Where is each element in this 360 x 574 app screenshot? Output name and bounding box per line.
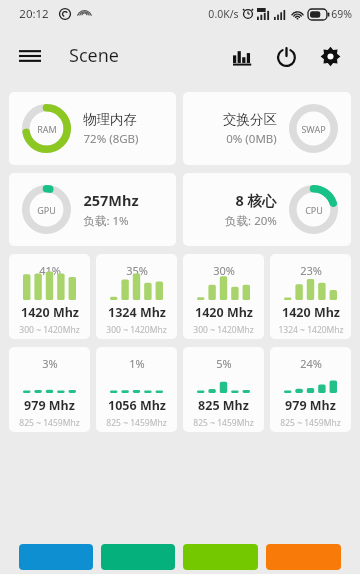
- staticText: 979 Mhz: [285, 397, 336, 414]
- staticText: 41%: [39, 263, 61, 278]
- staticText: 72% (8GB): [83, 131, 139, 147]
- staticText: RAM: [37, 123, 57, 135]
- button[interactable]: Statistics: [220, 34, 264, 78]
- staticText: 1324 Mhz: [108, 304, 166, 321]
- button[interactable]: Power: [264, 34, 308, 78]
- staticText: 1420 Mhz: [21, 304, 79, 321]
- button[interactable]: 3%: [9, 347, 90, 432]
- staticText: 负载: 20%: [225, 213, 277, 229]
- staticText: 300 ~ 1420Mhz: [19, 324, 80, 336]
- staticText: 交换分区: [223, 111, 277, 128]
- button[interactable]: 23%: [270, 254, 351, 339]
- button[interactable]: Mode 3: [183, 544, 258, 570]
- staticText: 24%: [300, 356, 322, 371]
- staticText: 825 Mhz: [198, 397, 249, 414]
- button[interactable]: Mode 4: [266, 544, 341, 570]
- button[interactable]: 24%: [270, 347, 351, 432]
- button[interactable]: Menu: [8, 34, 52, 78]
- staticText: 23%: [300, 263, 322, 278]
- staticText: 0% (0MB): [226, 131, 277, 147]
- staticText: Scene: [69, 43, 119, 68]
- staticText: SWAP: [301, 123, 326, 135]
- staticText: 8 核心: [235, 190, 277, 210]
- staticText: 825 ~ 1459Mhz: [193, 417, 254, 429]
- staticText: 3%: [42, 356, 58, 371]
- staticText: 825 ~ 1459Mhz: [106, 417, 167, 429]
- button[interactable]: 1%: [96, 347, 177, 432]
- button[interactable]: Settings: [308, 34, 352, 78]
- button[interactable]: Mode 1: [19, 544, 93, 570]
- staticText: GPU: [37, 204, 56, 216]
- staticText: 825 ~ 1459Mhz: [280, 417, 341, 429]
- staticText: 物理内存: [83, 111, 137, 128]
- staticText: 30%: [213, 263, 235, 278]
- button[interactable]: 8 核心: [183, 173, 351, 246]
- staticText: 257Mhz: [83, 190, 139, 210]
- staticText: 负载: 1%: [83, 213, 129, 229]
- staticText: 5%: [216, 356, 232, 371]
- button[interactable]: GPU: [9, 173, 176, 246]
- button[interactable]: 30%: [183, 254, 264, 339]
- staticText: 300 ~ 1420Mhz: [106, 324, 167, 336]
- button[interactable]: 41%: [9, 254, 90, 339]
- button[interactable]: RAM: [9, 92, 176, 165]
- staticText: 1420 Mhz: [195, 304, 253, 321]
- staticText: 1056 Mhz: [108, 397, 166, 414]
- staticText: 979 Mhz: [24, 397, 75, 414]
- staticText: 1324 ~ 1420Mhz: [278, 324, 344, 336]
- staticText: 1420 Mhz: [282, 304, 340, 321]
- staticText: 69%: [331, 7, 352, 21]
- staticText: 0.0K/s: [208, 7, 239, 21]
- staticText: CPU: [305, 204, 323, 216]
- button[interactable]: 交换分区: [183, 92, 351, 165]
- staticText: 20:12: [19, 6, 49, 22]
- staticText: 35%: [126, 263, 148, 278]
- staticText: 300 ~ 1420Mhz: [193, 324, 254, 336]
- staticText: 1%: [129, 356, 145, 371]
- staticText: 825 ~ 1459Mhz: [19, 417, 80, 429]
- button[interactable]: 35%: [96, 254, 177, 339]
- button[interactable]: 5%: [183, 347, 264, 432]
- button[interactable]: Mode 2: [101, 544, 175, 570]
